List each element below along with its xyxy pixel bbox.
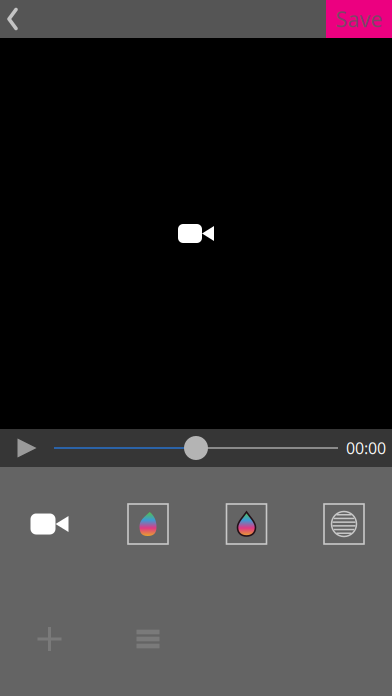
button[interactable]: Video — [0, 501, 99, 547]
staticText: Save — [335, 5, 382, 33]
button[interactable]: Color — [197, 501, 296, 547]
button[interactable]: Effects — [296, 501, 392, 547]
staticText: 00:00 — [346, 437, 386, 459]
button[interactable]: Save — [326, 0, 392, 38]
button[interactable]: Back — [0, 0, 52, 38]
button[interactable]: Play — [0, 429, 54, 467]
button[interactable]: Menu — [99, 617, 197, 661]
button[interactable]: Add — [0, 617, 99, 661]
button[interactable]: Filters — [99, 501, 197, 547]
